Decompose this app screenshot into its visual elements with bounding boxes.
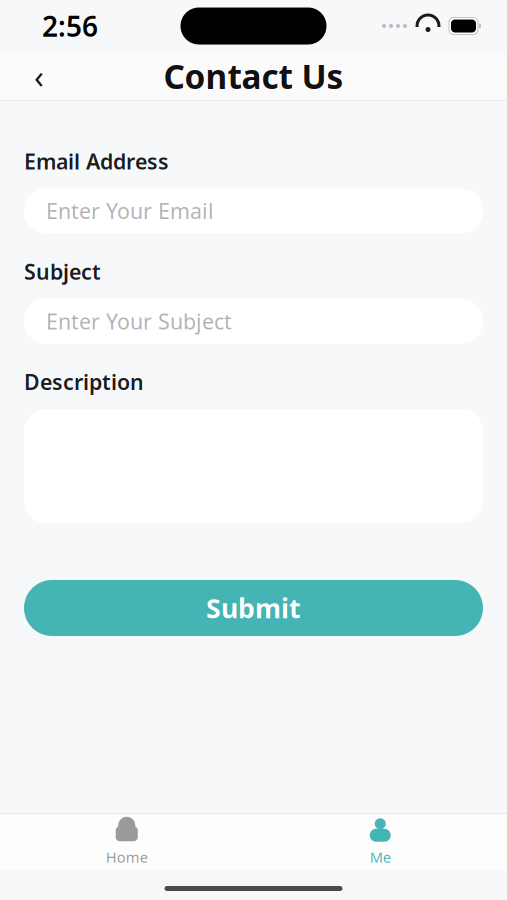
- staticText: Enter Your Email: [46, 197, 214, 225]
- staticText: ‹: [34, 55, 44, 97]
- staticText: Subject: [24, 257, 101, 286]
- staticText: Submit: [206, 590, 301, 626]
- button[interactable]: Back: [18, 57, 60, 95]
- staticText: 2:56: [42, 7, 98, 45]
- staticText: Description: [24, 368, 144, 396]
- button[interactable]: Submit: [24, 580, 483, 636]
- button[interactable]: Me: [325, 816, 435, 868]
- staticText: Contact Us: [163, 54, 343, 98]
- staticText: Email Address: [24, 147, 169, 175]
- staticText: Home: [106, 847, 148, 867]
- staticText: Enter Your Subject: [46, 307, 232, 335]
- button[interactable]: Home: [72, 816, 182, 868]
- staticText: Me: [370, 847, 391, 867]
